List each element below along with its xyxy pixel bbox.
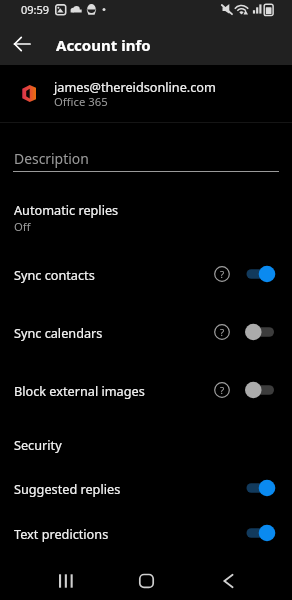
button[interactable]: Help about Sync contacts — [209, 261, 235, 287]
staticText: ? — [220, 268, 225, 281]
staticText: Description — [14, 149, 89, 168]
button[interactable]: Back — [200, 566, 256, 596]
staticText: ? — [220, 384, 225, 397]
staticText: Suggested replies — [14, 480, 121, 497]
staticText: Security — [14, 436, 62, 453]
button[interactable]: Block external images — [0, 368, 292, 412]
staticText: Off — [14, 219, 31, 234]
button[interactable]: On — [245, 264, 278, 284]
button[interactable]: On — [245, 523, 278, 543]
button[interactable]: Help about Sync calendars — [209, 319, 235, 345]
button[interactable]: Sync calendars — [0, 310, 292, 354]
staticText: Text predictions — [14, 525, 109, 542]
staticText: Automatic replies — [14, 201, 119, 218]
button[interactable]: Off — [245, 322, 278, 342]
button[interactable]: Home — [118, 566, 174, 596]
button[interactable]: On — [245, 478, 278, 498]
button[interactable]: Sync contacts — [0, 252, 292, 296]
button[interactable]: Recent apps — [37, 566, 93, 596]
staticText: 09:59 — [21, 2, 50, 17]
button[interactable]: james@thereidsonline.com — [0, 68, 292, 122]
button[interactable]: Automatic replies — [0, 195, 292, 243]
button[interactable]: Off — [245, 380, 278, 400]
staticText: Sync contacts — [14, 266, 95, 283]
staticText: Block external images — [14, 382, 145, 399]
button[interactable]: Suggested replies — [0, 466, 292, 510]
button[interactable]: Text predictions — [0, 511, 292, 555]
staticText: james@thereidsonline.com — [54, 78, 216, 95]
button[interactable]: Help about Block external images — [209, 377, 235, 403]
staticText: Office 365 — [54, 94, 108, 109]
staticText: ? — [220, 326, 225, 339]
staticText: Account info — [56, 35, 151, 55]
staticText: Sync calendars — [14, 324, 103, 341]
button[interactable]: Navigate up — [0, 22, 44, 65]
button[interactable]: Security — [0, 421, 292, 465]
